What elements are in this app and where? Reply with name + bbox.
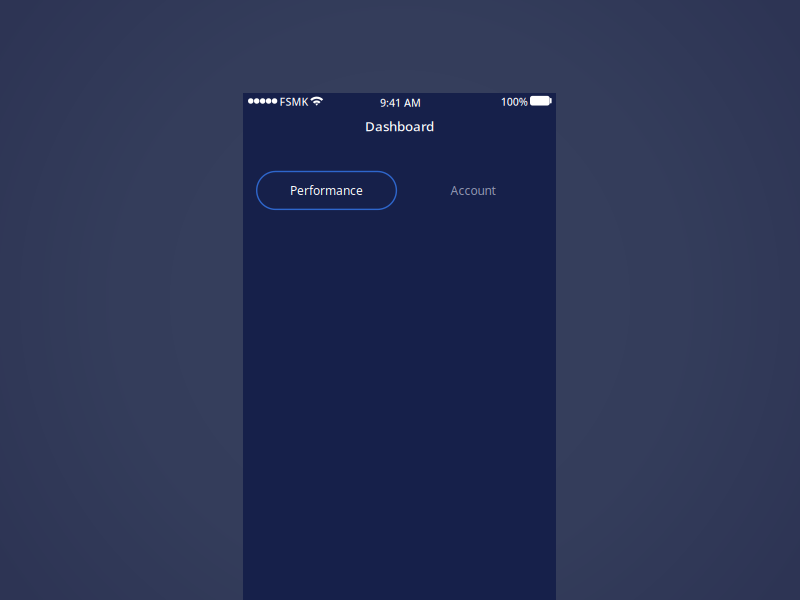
button[interactable]: Account — [429, 171, 517, 209]
staticText: FSMK — [280, 94, 309, 109]
staticText: Performance — [290, 182, 363, 198]
staticText: 9:41 AM — [380, 95, 421, 110]
staticText: Account — [450, 182, 495, 198]
staticText: Dashboard — [365, 117, 434, 135]
staticText: 100% — [501, 94, 528, 109]
button[interactable]: Performance — [257, 171, 396, 209]
